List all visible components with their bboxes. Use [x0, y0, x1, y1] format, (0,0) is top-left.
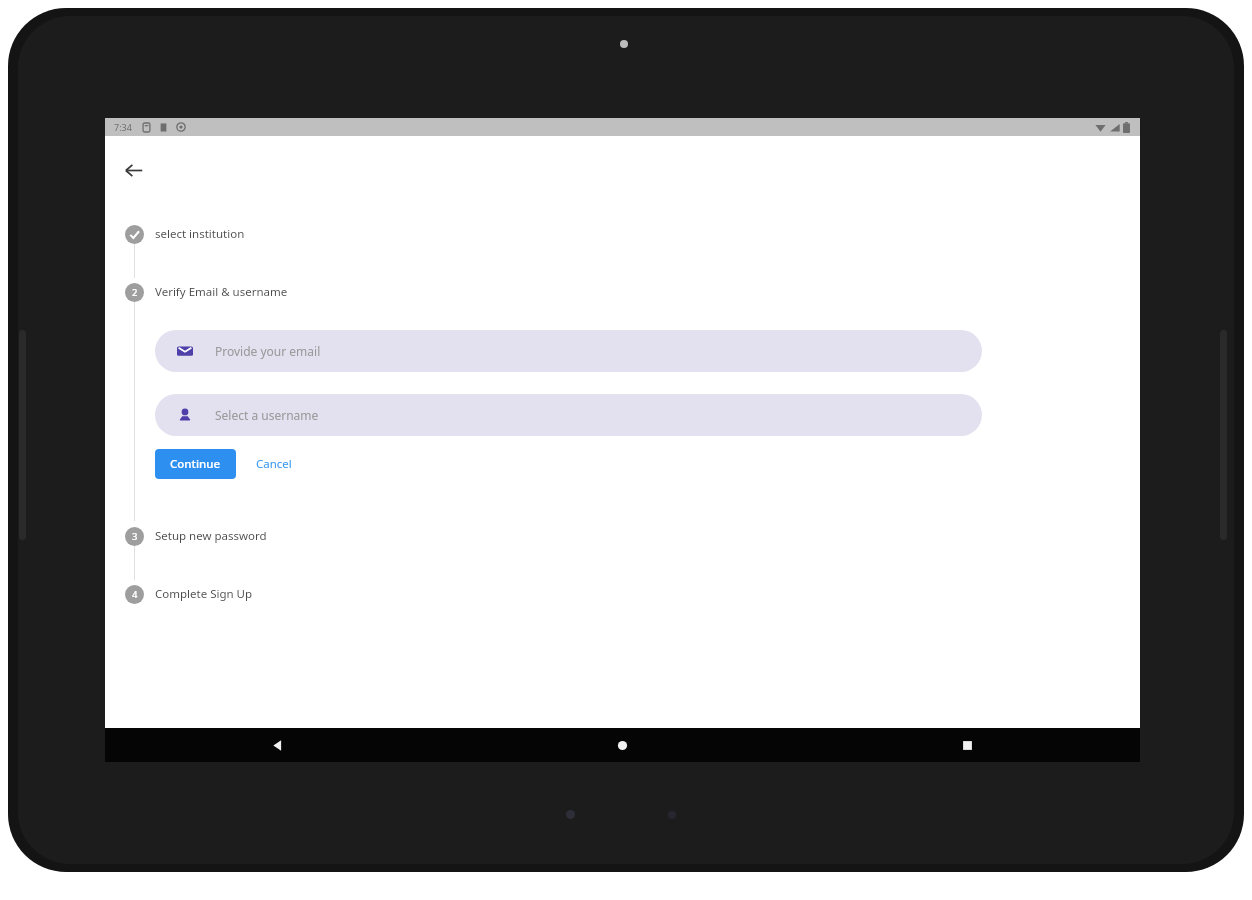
button[interactable]: Provide your email [155, 330, 982, 372]
button[interactable]: 4 [125, 580, 465, 608]
staticText: Verify Email & username [155, 284, 288, 300]
button[interactable]: Cancel [248, 449, 300, 479]
staticText: Setup new password [155, 528, 267, 544]
button[interactable]: 2 [125, 278, 465, 306]
staticText: Complete Sign Up [155, 586, 253, 602]
button[interactable]: Back [105, 728, 450, 762]
button[interactable]: Recent apps [795, 728, 1140, 762]
staticText: Provide your email [215, 343, 321, 359]
staticText: Cancel [256, 456, 292, 472]
button[interactable]: Select a username [155, 394, 982, 436]
staticText: 7:34 [114, 121, 132, 133]
button[interactable]: Continue [155, 449, 236, 479]
staticText: Continue [170, 456, 221, 472]
staticText: select institution [155, 226, 245, 242]
button[interactable]: select institution [125, 220, 465, 248]
button[interactable]: Navigate up [115, 152, 151, 188]
staticText: Select a username [215, 407, 319, 423]
button[interactable]: 3 [125, 522, 465, 550]
staticText: 3 [132, 530, 138, 543]
staticText: 2 [132, 286, 138, 299]
staticText: 4 [132, 588, 138, 601]
button[interactable]: Home [450, 728, 795, 762]
